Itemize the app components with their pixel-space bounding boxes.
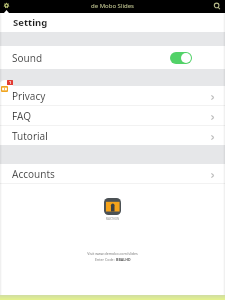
staticText: Sound xyxy=(12,51,43,65)
staticText: Privacy xyxy=(12,89,46,103)
staticText: FAQ xyxy=(12,109,31,123)
button[interactable]: Sound xyxy=(0,46,225,69)
button[interactable]: Privacy xyxy=(0,86,225,105)
staticText: Visit www.demobo.com/slides xyxy=(87,251,138,256)
staticText: BBALHD xyxy=(116,257,131,262)
staticText: Setting xyxy=(13,16,48,29)
staticText: 1 xyxy=(9,80,12,85)
button[interactable]: Tutorial xyxy=(0,126,225,145)
staticText: de Mobo Slides xyxy=(91,2,134,10)
button[interactable]: Accounts xyxy=(0,164,225,183)
staticText: MAXTHON xyxy=(106,217,119,221)
button[interactable]: FAQ xyxy=(0,106,225,125)
other: Search xyxy=(212,1,223,12)
staticText: Enter Code: xyxy=(95,257,116,262)
button[interactable]: Promo xyxy=(0,80,13,95)
button[interactable]: Sound toggle xyxy=(170,52,192,64)
staticText: Accounts xyxy=(12,167,55,181)
staticText: Tutorial xyxy=(12,129,48,143)
